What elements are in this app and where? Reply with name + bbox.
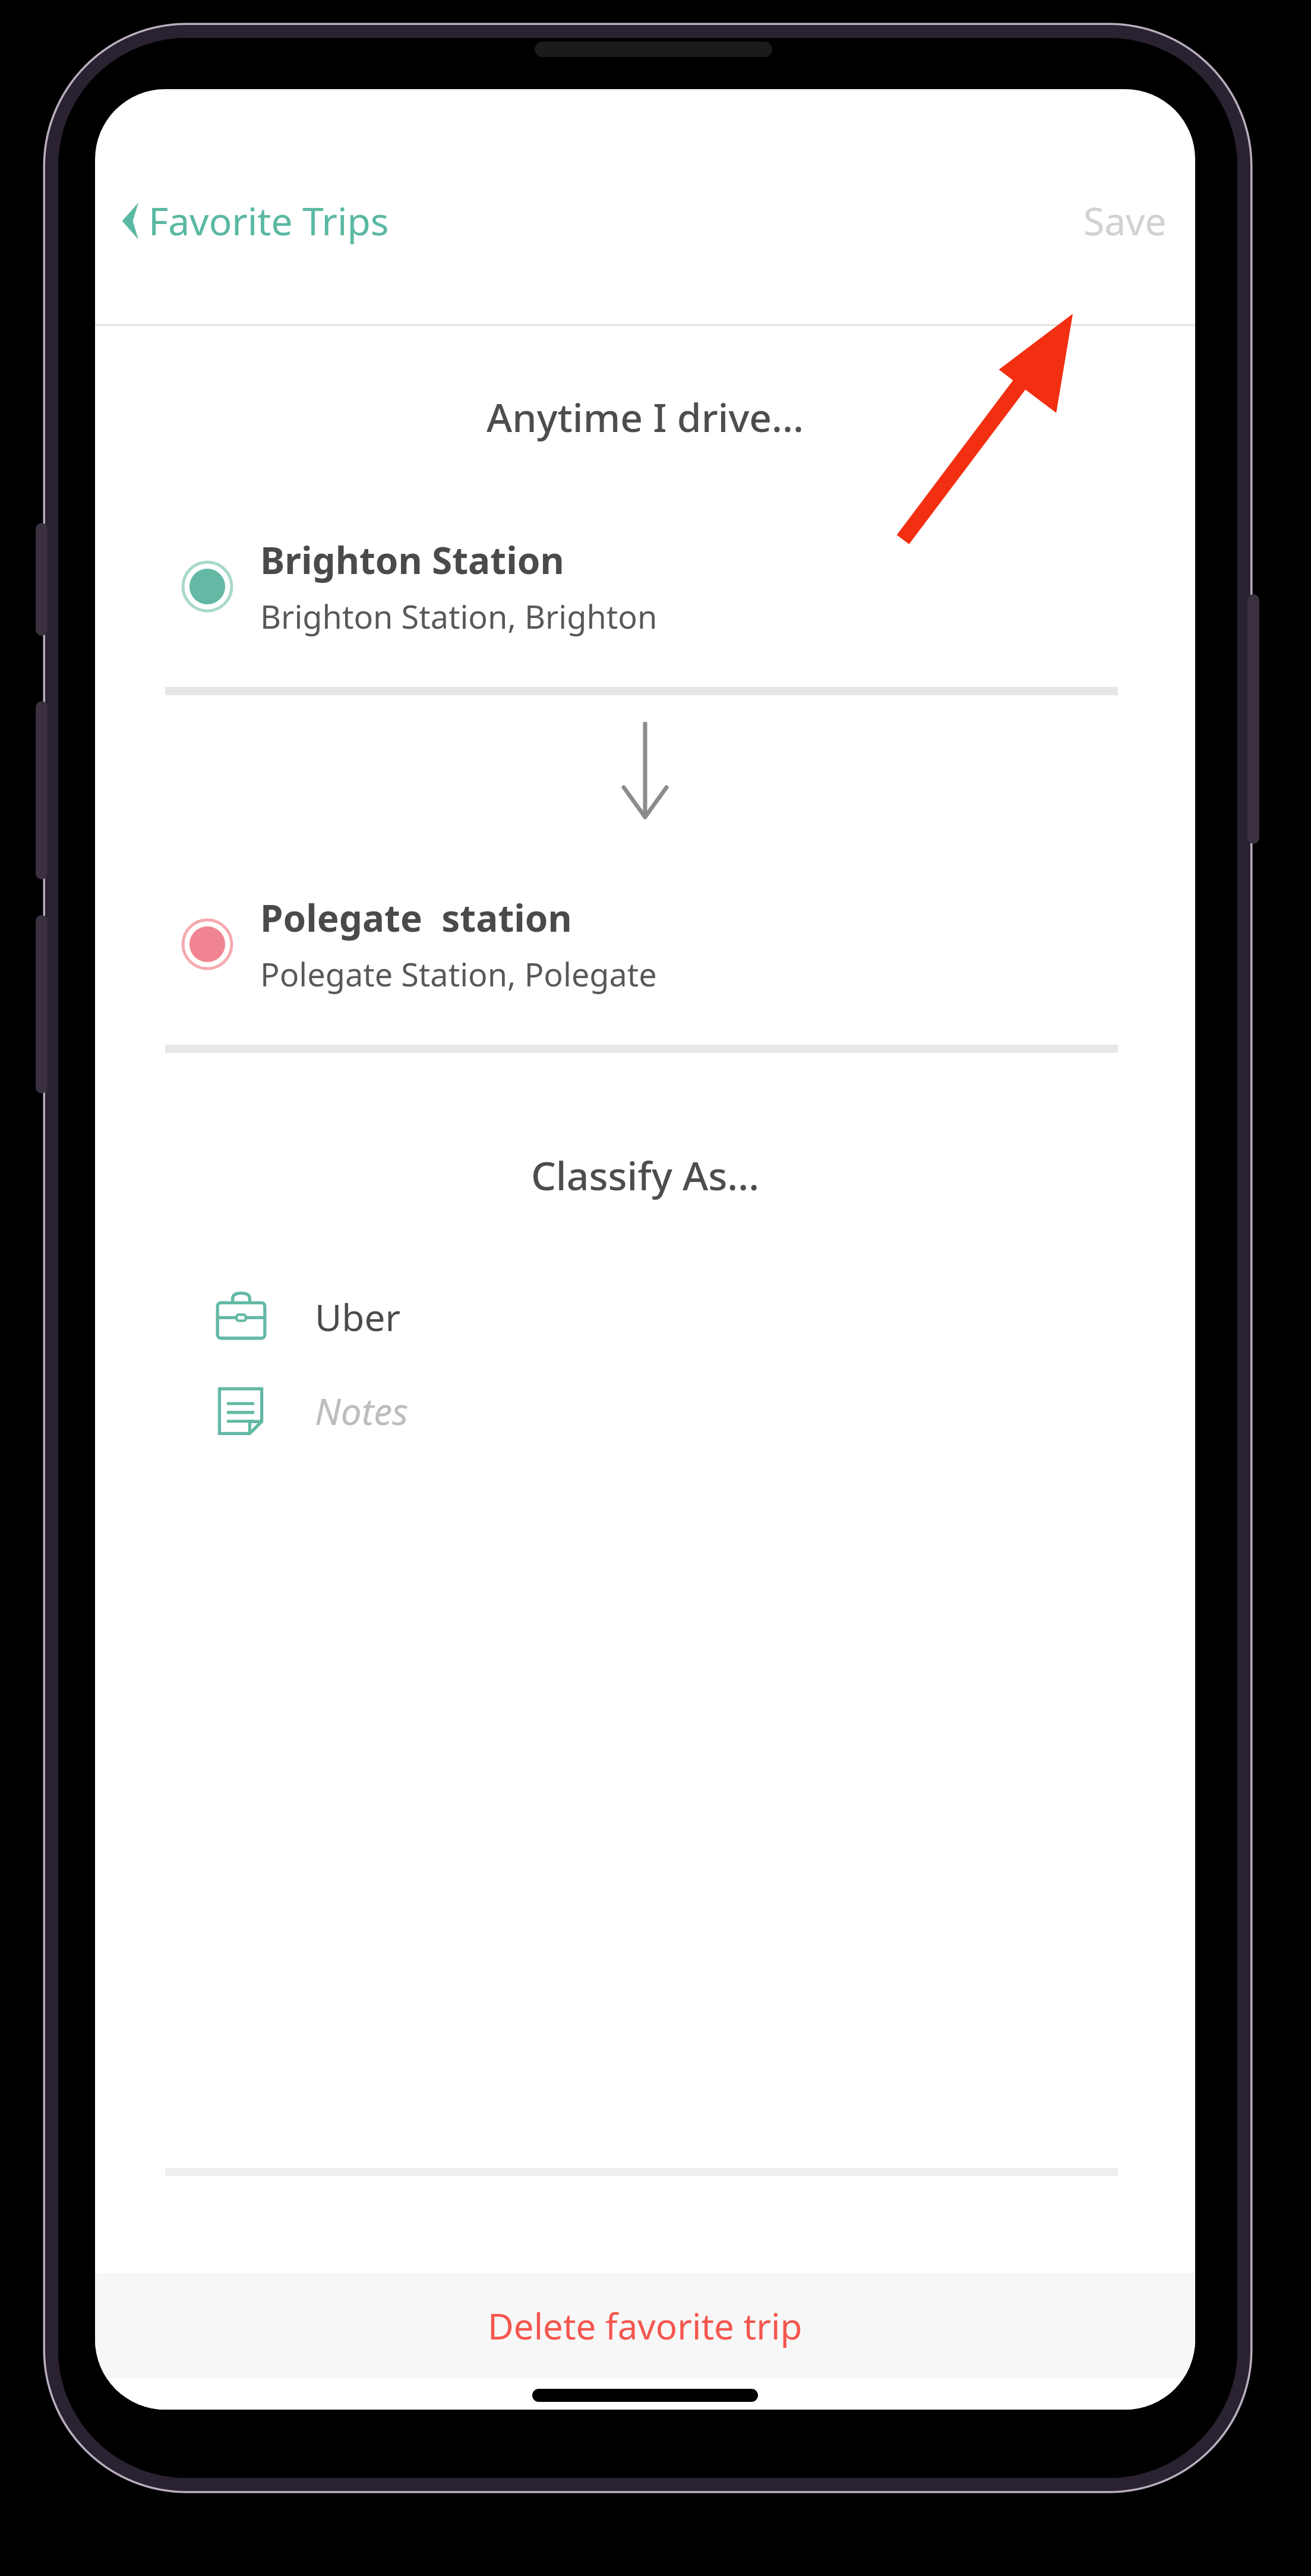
staticText: Save xyxy=(1083,195,1167,247)
button[interactable]: Brighton Station xyxy=(165,486,1118,687)
staticText: Notes xyxy=(315,1386,409,1436)
staticText: Brighton Station, Brighton xyxy=(260,594,658,638)
staticText: Uber xyxy=(315,1292,401,1342)
other: Work category xyxy=(213,1288,270,1345)
staticText: Brighton Station xyxy=(260,535,564,585)
staticText: Polegate station xyxy=(260,893,572,942)
button[interactable]: Favorite Trips xyxy=(95,187,407,255)
button[interactable]: Polegate station xyxy=(165,844,1118,1045)
staticText: Classify As... xyxy=(95,1148,1195,1202)
other: Notes xyxy=(213,1382,270,1439)
staticText: Polegate Station, Polegate xyxy=(260,952,657,996)
button[interactable]: Work category xyxy=(165,1280,1118,1354)
staticText: Favorite Trips xyxy=(149,195,389,247)
button[interactable]: Notes xyxy=(165,1374,1118,1448)
staticText: Anytime I drive... xyxy=(95,390,1195,443)
button[interactable]: Save xyxy=(1055,184,1195,257)
staticText: Delete favorite trip xyxy=(488,2301,803,2350)
button[interactable]: Delete favorite trip xyxy=(95,2273,1195,2378)
